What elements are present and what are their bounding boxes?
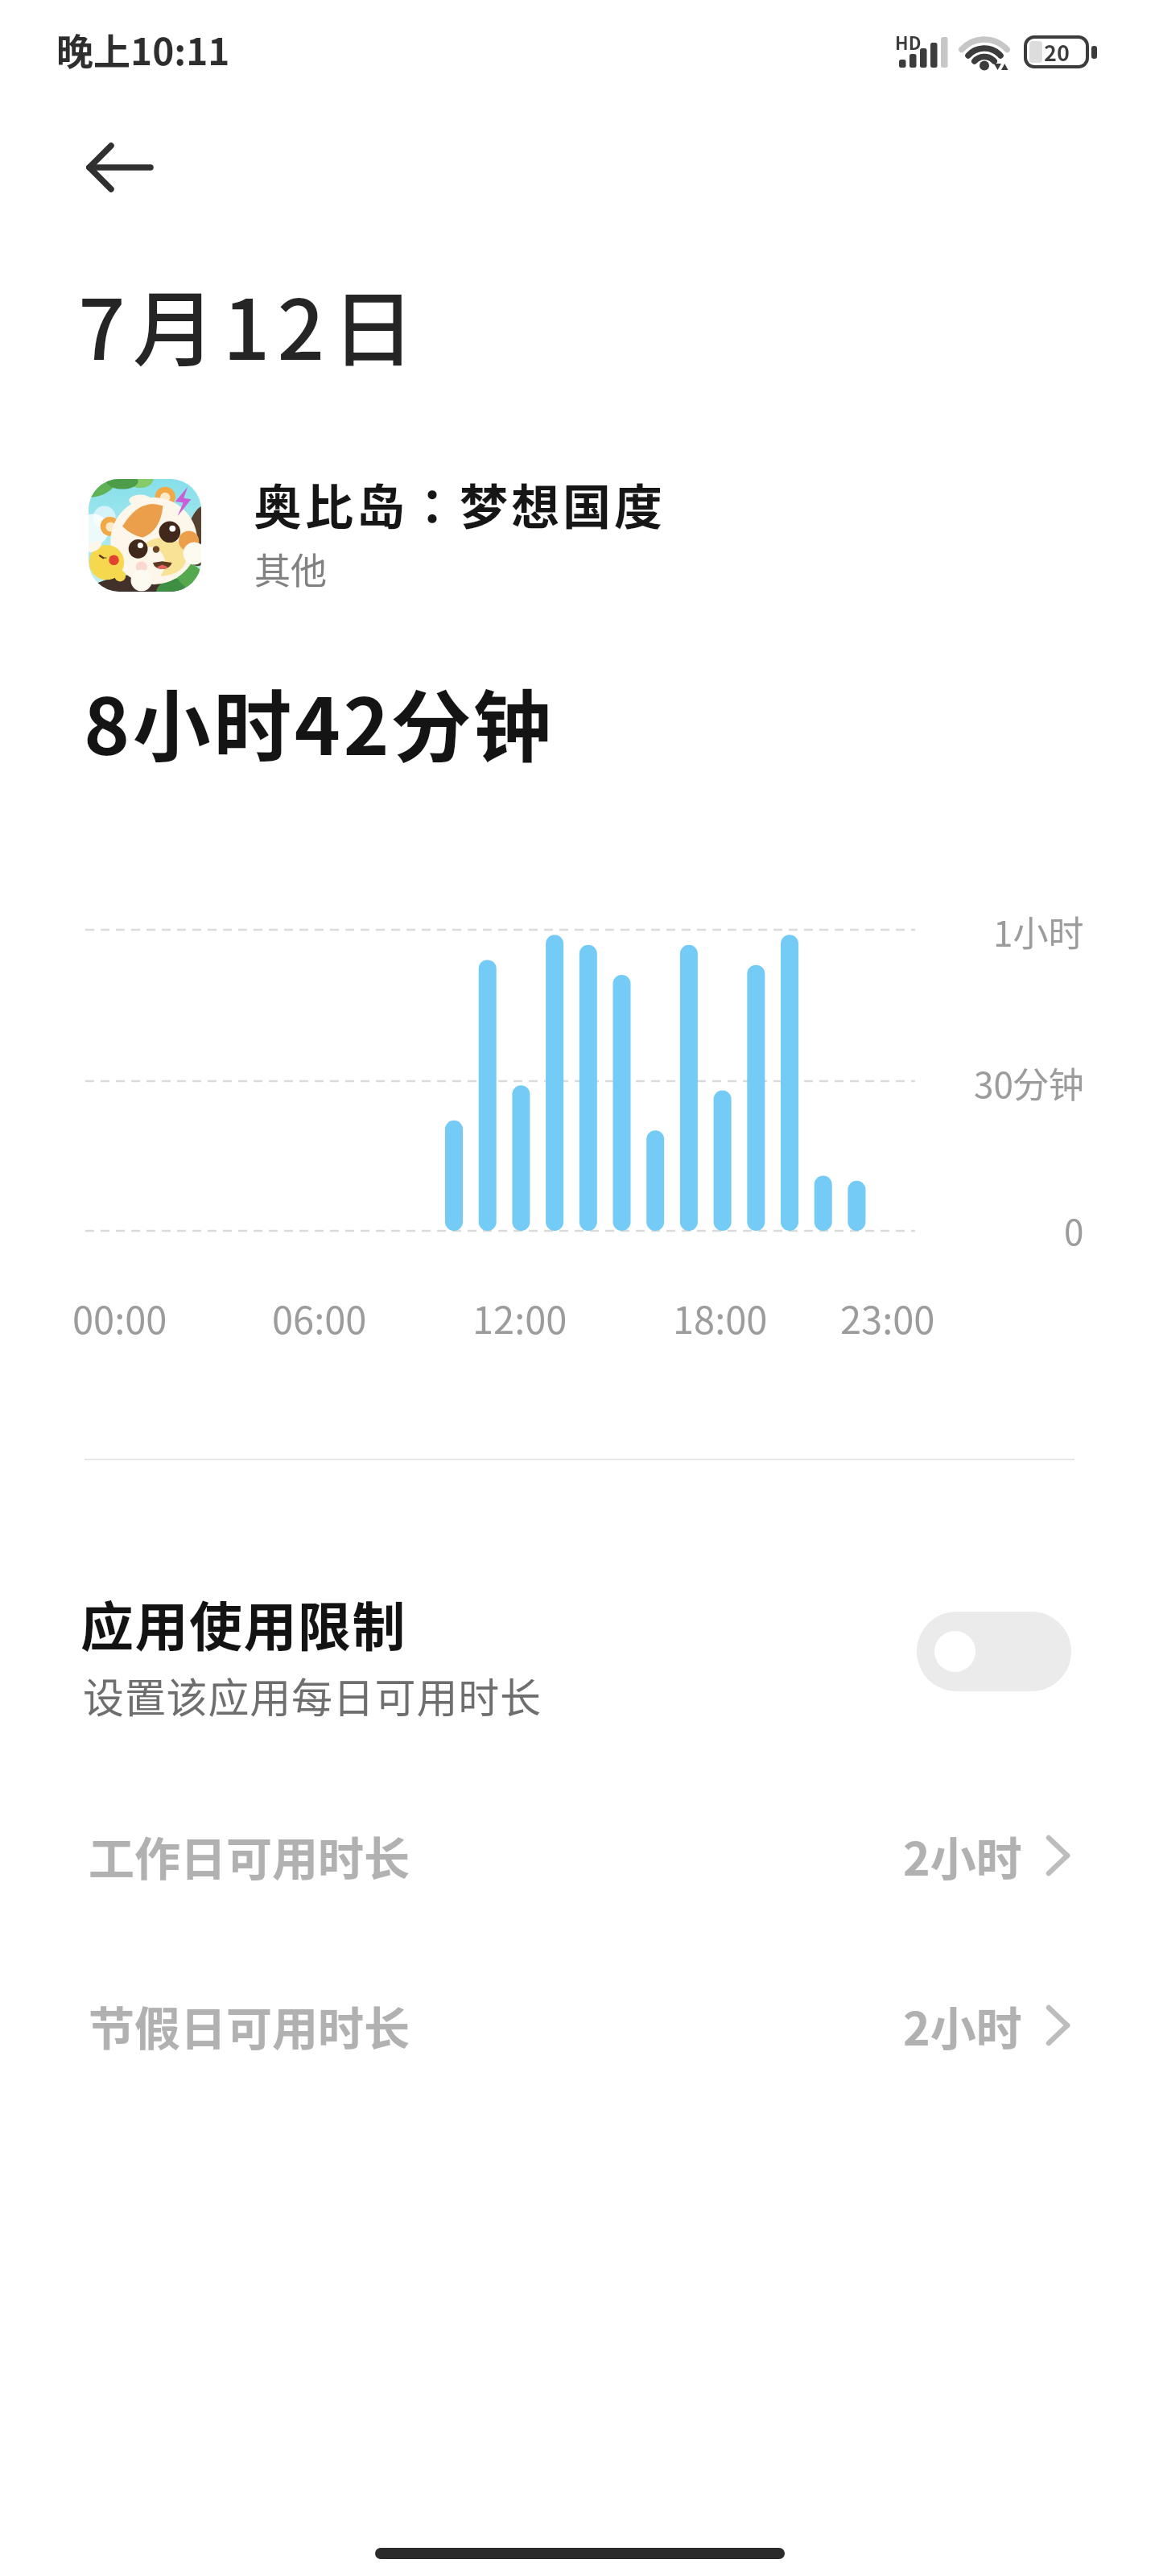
staticText: 30分钟 <box>974 1057 1084 1108</box>
staticText: 00:00 <box>72 1290 167 1344</box>
button[interactable] <box>76 129 157 205</box>
button[interactable] <box>0 1562 1159 1739</box>
staticText: 1小时 <box>993 906 1084 957</box>
staticText: 应用使用限制 <box>80 1584 406 1662</box>
staticText: 设置该应用每日可用时长 <box>83 1666 542 1725</box>
staticText: 节假日可用时长 <box>89 1992 410 2059</box>
button[interactable] <box>917 1612 1071 1691</box>
staticText: 奥比岛：梦想国度 <box>254 469 666 539</box>
staticText: 12:00 <box>472 1290 567 1344</box>
staticText: 2小时 <box>903 1992 1022 2059</box>
staticText: 工作日可用时长 <box>89 1823 410 1889</box>
staticText: 其他 <box>254 543 328 595</box>
staticText: 06:00 <box>272 1290 367 1344</box>
staticText: 0 <box>1064 1204 1084 1256</box>
button[interactable] <box>0 1961 1159 2090</box>
staticText: 2小时 <box>903 1823 1022 1889</box>
staticText: 18:00 <box>673 1290 768 1344</box>
button[interactable] <box>0 1791 1159 1920</box>
staticText: 23:00 <box>840 1290 935 1344</box>
staticText: 晚上10:11 <box>56 23 230 76</box>
staticText: 20 <box>1044 36 1070 68</box>
staticText: 7月12日 <box>78 264 423 384</box>
staticText: HD <box>895 29 922 55</box>
staticText: 8小时42分钟 <box>84 664 555 777</box>
button[interactable] <box>89 479 201 592</box>
